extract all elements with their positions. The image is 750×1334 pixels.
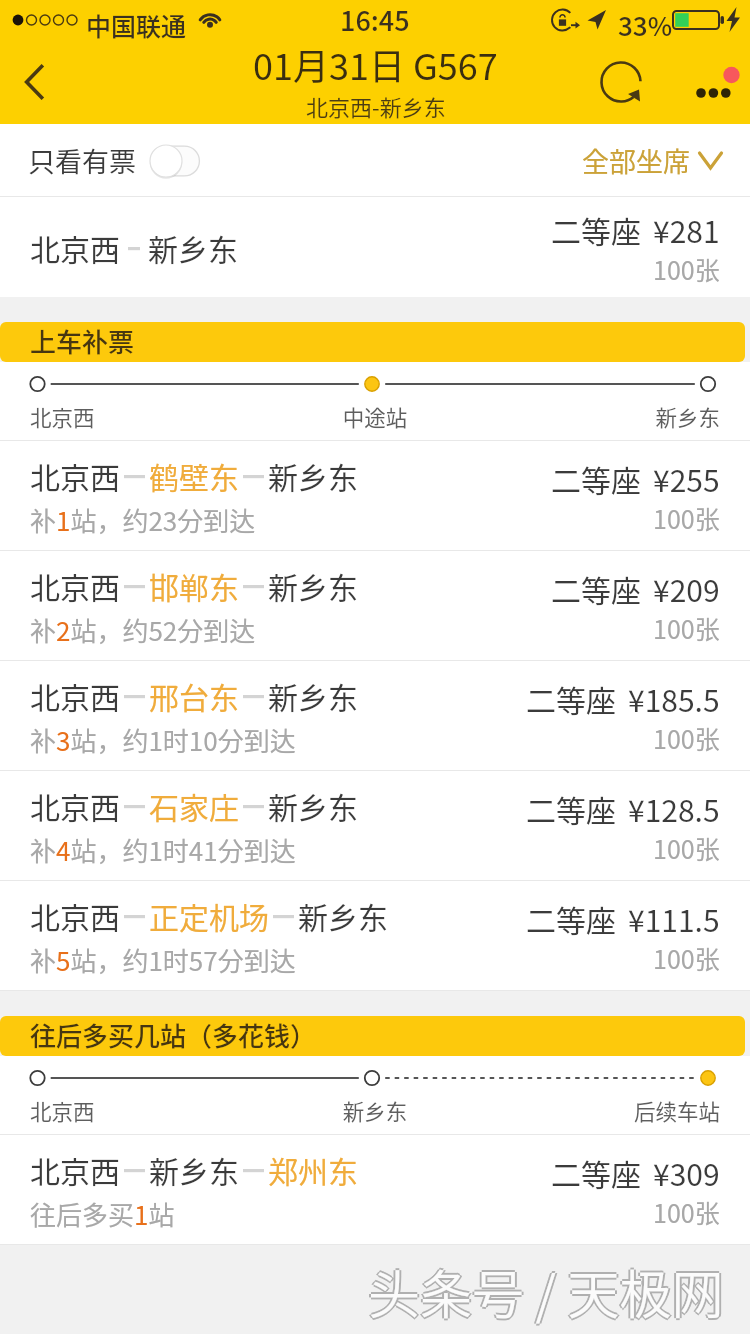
button[interactable]: 北京西 (0, 551, 750, 661)
staticText: 新乡东 (268, 674, 358, 717)
staticText: ¥255 (653, 457, 720, 500)
staticText: 正定机场 (149, 894, 269, 937)
staticText: 北京西-新乡东 (306, 90, 446, 122)
staticText: 新乡东 (268, 564, 358, 607)
staticText: 100张 (653, 251, 720, 287)
staticText: 二等座 (526, 897, 616, 940)
staticText: 头条号 / 天极网 (368, 1252, 724, 1327)
staticText: 补2站，约52分到达 (30, 611, 256, 649)
staticText: 二等座 (551, 457, 641, 500)
staticText: 新乡东 (149, 1148, 239, 1191)
staticText: 只看有票 (28, 141, 136, 180)
button[interactable]: 北京西 (0, 1135, 750, 1245)
button[interactable]: 北京西 (0, 661, 750, 771)
staticText: 中国联通 (86, 7, 187, 43)
staticText: 二等座 (551, 567, 641, 610)
staticText: 100张 (653, 720, 720, 756)
button[interactable]: 只看有票 (28, 141, 204, 180)
staticText: 北京西 (30, 1148, 120, 1191)
staticText: 补4站，约1时41分到达 (30, 831, 296, 869)
staticText: 补3站，约1时10分到达 (30, 721, 296, 759)
staticText: ¥281 (653, 208, 720, 251)
staticText: 新乡东 (268, 454, 358, 497)
staticText: 北京西 (30, 784, 120, 827)
staticText: 北京西 (30, 226, 120, 269)
staticText: ¥185.5 (628, 677, 720, 720)
staticText: 邯郸东 (149, 564, 239, 607)
button[interactable]: More options (672, 47, 750, 117)
staticText: 郑州东 (268, 1148, 358, 1191)
staticText: 二等座 (526, 677, 616, 720)
staticText: 100张 (653, 1194, 720, 1230)
staticText: 100张 (653, 500, 720, 536)
staticText: 北京西 (30, 1095, 260, 1126)
staticText: 16:45 (340, 0, 410, 39)
staticText: 补1站，约23分到达 (30, 501, 256, 539)
staticText: 头条号 / 天极网 (368, 1254, 724, 1329)
button[interactable]: 全部坐席 (582, 141, 724, 180)
staticText: 头条号 / 天极网 (366, 1254, 722, 1329)
staticText: 01月31日 G567 (253, 38, 498, 90)
staticText: 北京西 (30, 454, 120, 497)
staticText: ¥111.5 (628, 897, 720, 940)
staticText: 补5站，约1时57分到达 (30, 941, 296, 979)
staticText: 北京西 (30, 894, 120, 937)
staticText: 33% (618, 6, 673, 44)
button[interactable]: Refresh (584, 45, 658, 119)
staticText: 上车补票 (30, 322, 135, 360)
button[interactable]: 北京西 (0, 771, 750, 881)
staticText: 往后多买几站（多花钱） (30, 1016, 317, 1054)
staticText: 北京西 (30, 674, 120, 717)
staticText: 100张 (653, 940, 720, 976)
staticText: 鹤壁东 (149, 454, 239, 497)
staticText: 新乡东 (268, 784, 358, 827)
staticText: 头条号 / 天极网 (370, 1254, 726, 1329)
button[interactable]: 北京西 (0, 441, 750, 551)
button[interactable]: 北京西 (0, 881, 750, 991)
staticText: ¥128.5 (628, 787, 720, 830)
staticText: ¥309 (653, 1151, 720, 1194)
staticText: 二等座 (551, 1151, 641, 1194)
button[interactable]: 北京西 (0, 197, 750, 297)
staticText: 往后多买1站 (30, 1195, 175, 1233)
staticText: 石家庄 (149, 784, 239, 827)
staticText: 二等座 (551, 208, 641, 251)
staticText: 100张 (653, 610, 720, 646)
staticText: 新乡东 (298, 894, 388, 937)
staticText: 北京西 (30, 564, 120, 607)
staticText: 头条号 / 天极网 (368, 1256, 724, 1331)
staticText: 北京西 (30, 401, 260, 432)
button[interactable]: Back (0, 40, 70, 124)
staticText: 新乡东 (490, 401, 720, 432)
staticText: 二等座 (526, 787, 616, 830)
staticText: 中途站 (260, 401, 490, 432)
staticText: ¥209 (653, 567, 720, 610)
staticText: 全部坐席 (582, 141, 690, 180)
staticText: 邢台东 (149, 674, 239, 717)
staticText: 后续车站 (490, 1095, 720, 1126)
staticText: 100张 (653, 830, 720, 866)
staticText: 新乡东 (148, 226, 238, 269)
staticText: 新乡东 (260, 1095, 490, 1126)
